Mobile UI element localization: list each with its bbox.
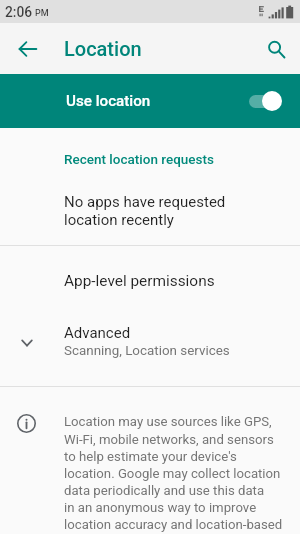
staticText: Use location [66,92,249,110]
button[interactable]: Back [10,31,46,67]
button[interactable]: Advanced [0,316,300,369]
staticText: Scanning, Location services [64,343,230,359]
staticText: Location may use sources like GPS, Wi-Fi… [64,414,283,534]
staticText: Recent location requests [64,151,214,167]
button[interactable]: Use location [0,74,300,128]
staticText: Location [64,37,142,60]
staticText: 2:06 [5,4,33,20]
button[interactable]: Search [258,31,294,67]
staticText: App-level permissions [64,272,215,290]
staticText: Advanced [64,324,131,342]
staticText: PM [35,8,49,19]
button[interactable]: App-level permissions [0,246,300,316]
staticText: No apps have requested location recently [64,193,226,228]
